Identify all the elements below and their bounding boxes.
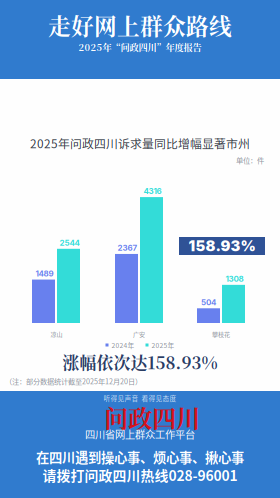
staticText: 1308 bbox=[225, 274, 243, 284]
staticText: 2024年 bbox=[111, 340, 134, 350]
staticText: 2025年“问政四川”年度报告 bbox=[78, 40, 201, 54]
staticText: 听得见声音 看得见态度 bbox=[103, 393, 176, 403]
staticText: 请拨打问政四川热线028-96001 bbox=[42, 465, 237, 485]
staticText: 问政四川 bbox=[104, 399, 200, 435]
staticText: 凉山 bbox=[50, 330, 62, 338]
staticText: 涨幅依次达158.93% bbox=[62, 350, 217, 374]
staticText: 4316 bbox=[143, 186, 161, 196]
staticText: 单位：件 bbox=[236, 155, 264, 165]
staticText: 158.93% bbox=[188, 237, 255, 255]
staticText: （注：部分数据统计截至2025年12月20日） bbox=[5, 376, 142, 386]
staticText: 广安 bbox=[133, 330, 145, 338]
staticText: 在四川遇到操心事、烦心事、揪心事 bbox=[36, 447, 244, 467]
staticText: 四川省网上群众工作平台 bbox=[85, 427, 195, 441]
staticText: 2025年 bbox=[151, 340, 174, 350]
staticText: 2025年问政四川诉求量同比增幅显著市州 bbox=[30, 134, 250, 152]
staticText: 攀枝花 bbox=[212, 330, 230, 338]
staticText: 2544 bbox=[59, 238, 79, 248]
staticText: 1489 bbox=[35, 269, 53, 278]
staticText: 504 bbox=[201, 297, 216, 307]
staticText: 2367 bbox=[117, 243, 137, 253]
staticText: 走好网上群众路线 bbox=[48, 9, 232, 41]
